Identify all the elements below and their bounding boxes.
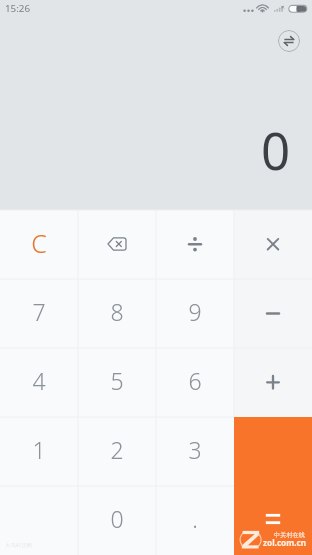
button[interactable]: 3 (156, 417, 234, 486)
staticText: 8 (110, 296, 124, 327)
button[interactable]: Unit converter (278, 30, 300, 52)
button[interactable]: Multiply (234, 210, 312, 279)
button[interactable]: 7 (0, 279, 78, 348)
staticText: 15:26 (5, 2, 31, 15)
staticText: 0 (261, 115, 291, 184)
button[interactable]: 1 (0, 417, 78, 486)
staticText: 5 (110, 365, 124, 396)
button[interactable]: 9 (156, 279, 234, 348)
staticText: 0 (110, 503, 124, 534)
staticText: 6 (188, 365, 202, 396)
button[interactable]: Equals (234, 417, 312, 555)
button[interactable]: Minus (234, 279, 312, 348)
button[interactable]: 5 (78, 348, 156, 417)
staticText: 火鸟科技网 (5, 542, 32, 549)
button[interactable]: Divide (156, 210, 234, 279)
staticText: . (192, 503, 198, 534)
button[interactable]: Plus (234, 348, 312, 417)
staticText: 3 (188, 434, 202, 465)
staticText: 2 (110, 434, 124, 465)
button[interactable]: Backspace (78, 210, 156, 279)
staticText: zol.com.cn (263, 537, 307, 548)
staticText: 9 (188, 296, 202, 327)
staticText: 中关村在线 (274, 531, 305, 539)
button[interactable]: 6 (156, 348, 234, 417)
staticText: 1 (32, 434, 46, 465)
button[interactable]: 0 (78, 486, 156, 555)
staticText: 7 (32, 296, 46, 327)
button[interactable]: 8 (78, 279, 156, 348)
button[interactable]: C (0, 210, 78, 279)
staticText: C (31, 226, 47, 260)
button[interactable]: 4 (0, 348, 78, 417)
staticText: 4 (32, 365, 46, 396)
button[interactable]: 2 (78, 417, 156, 486)
